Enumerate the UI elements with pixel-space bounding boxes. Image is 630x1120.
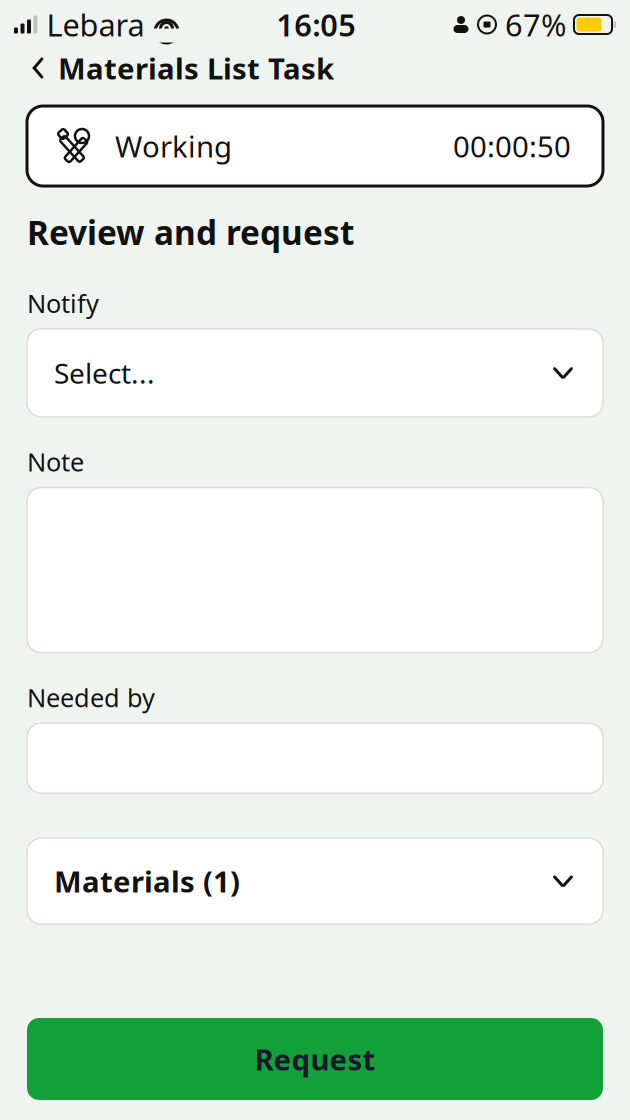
staticText: Request: [254, 1039, 375, 1078]
staticText: 16:05: [276, 4, 356, 45]
button[interactable]: Materials (1): [27, 838, 603, 924]
staticText: Needed by: [27, 680, 155, 714]
staticText: Lebara: [46, 4, 144, 45]
button[interactable]: Text field: [27, 723, 603, 793]
staticText: 00:00:50: [453, 126, 571, 165]
staticText: Working: [115, 126, 232, 165]
staticText: 67%: [505, 4, 566, 45]
staticText: Materials List Task: [58, 48, 334, 87]
button[interactable]: Select...: [27, 329, 603, 417]
staticText: Materials (1): [54, 862, 240, 901]
staticText: Review and request: [27, 210, 354, 254]
staticText: Select...: [54, 354, 155, 391]
button[interactable]: Materials List Task: [0, 36, 334, 99]
button[interactable]: Request: [27, 1018, 603, 1100]
button[interactable]: Working: [27, 106, 603, 186]
staticText: Notify: [27, 286, 99, 320]
staticText: Note: [27, 445, 84, 478]
